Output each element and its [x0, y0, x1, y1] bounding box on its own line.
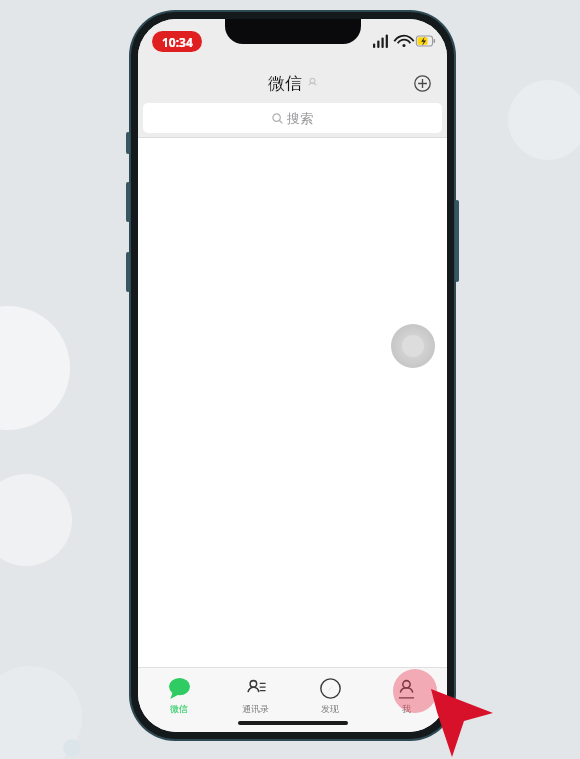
button[interactable]: 搜索	[143, 103, 442, 133]
staticText: 微信	[268, 73, 302, 94]
button[interactable]: 发现	[295, 673, 365, 714]
button[interactable]: AssistiveTouch	[391, 324, 435, 368]
staticText: 微信	[170, 703, 188, 714]
button[interactable]: Add	[407, 68, 437, 98]
staticText: 我	[402, 703, 411, 714]
button[interactable]: 我	[371, 673, 441, 714]
staticText: 搜索	[287, 110, 313, 126]
staticText: 10:34	[162, 34, 193, 50]
button[interactable]: 微信	[144, 673, 214, 714]
staticText: 通讯录	[242, 703, 269, 714]
button[interactable]: 通讯录	[220, 673, 290, 714]
staticText: 发现	[321, 703, 339, 714]
